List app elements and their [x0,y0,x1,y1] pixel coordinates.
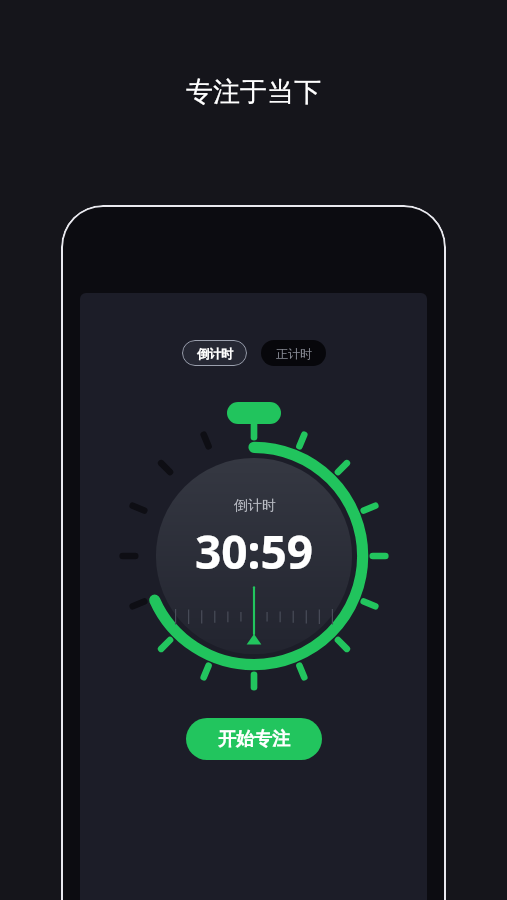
button[interactable]: 正计时 [261,340,326,366]
button[interactable]: 倒计时 [182,340,247,366]
button[interactable]: 开始专注 [186,718,322,760]
staticText: 30:59 [195,520,314,583]
staticText: 专注于当下 [186,75,321,109]
button[interactable]: Preset duration [227,402,281,424]
staticText: 倒计时 [197,346,233,361]
staticText: 正计时 [276,346,312,361]
staticText: 开始专注 [218,728,290,751]
staticText: 倒计时 [234,497,276,515]
